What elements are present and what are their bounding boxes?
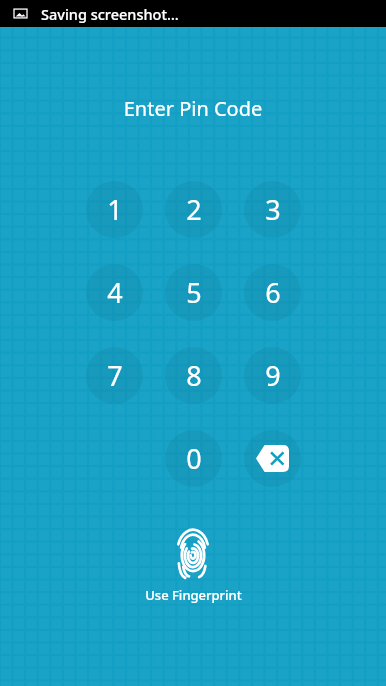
button[interactable]: Backspace	[244, 430, 301, 487]
button[interactable]: 2	[165, 181, 222, 238]
staticText: 4	[107, 274, 123, 311]
button[interactable]: 9	[244, 347, 301, 404]
button[interactable]: Use Fingerprint	[0, 528, 386, 604]
button[interactable]: 5	[165, 264, 222, 321]
staticText: Enter Pin Code	[0, 95, 386, 122]
staticText: 3	[265, 191, 281, 228]
staticText: 6	[265, 274, 281, 311]
button[interactable]: 1	[86, 181, 143, 238]
staticText: 5	[186, 274, 202, 311]
staticText: 7	[107, 357, 123, 394]
staticText: 2	[186, 191, 202, 228]
button[interactable]: 7	[86, 347, 143, 404]
button[interactable]: 3	[244, 181, 301, 238]
staticText: 0	[186, 440, 202, 477]
staticText: Use Fingerprint	[145, 586, 242, 604]
button[interactable]: 0	[165, 430, 222, 487]
button[interactable]: 4	[86, 264, 143, 321]
button[interactable]: 8	[165, 347, 222, 404]
staticText: Saving screenshot…	[41, 4, 179, 24]
staticText: 9	[265, 357, 281, 394]
button[interactable]: 6	[244, 264, 301, 321]
staticText: 8	[186, 357, 202, 394]
staticText: 1	[107, 191, 123, 228]
